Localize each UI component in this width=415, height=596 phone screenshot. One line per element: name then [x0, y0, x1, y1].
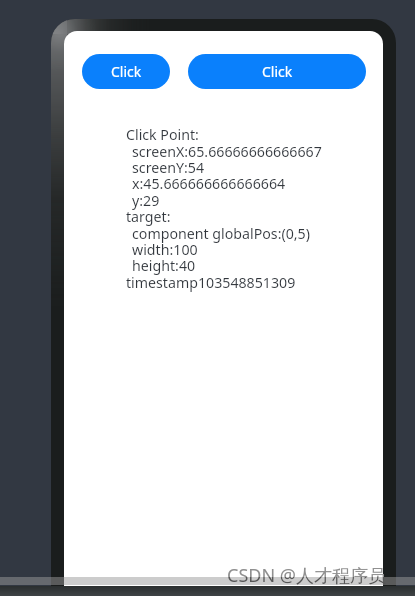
staticText: CSDN @人才程序员: [227, 563, 386, 588]
staticText: component globalPos:(0,5): [126, 224, 310, 243]
staticText: target:: [126, 207, 171, 226]
staticText: screenX:65.66666666666667: [126, 142, 322, 161]
staticText: width:100: [126, 240, 198, 259]
staticText: screenY:54: [126, 158, 205, 177]
button[interactable]: Click: [82, 54, 170, 89]
staticText: height:40: [126, 256, 196, 275]
staticText: Click: [262, 62, 293, 81]
staticText: timestamp103548851309: [126, 273, 296, 292]
button[interactable]: Click: [188, 54, 366, 89]
staticText: Click Point:: [126, 125, 199, 144]
staticText: y:29: [126, 191, 160, 210]
staticText: Click: [111, 62, 142, 81]
staticText: CSDN @人才程序员: [227, 563, 386, 588]
staticText: x:45.666666666666664: [126, 174, 286, 193]
